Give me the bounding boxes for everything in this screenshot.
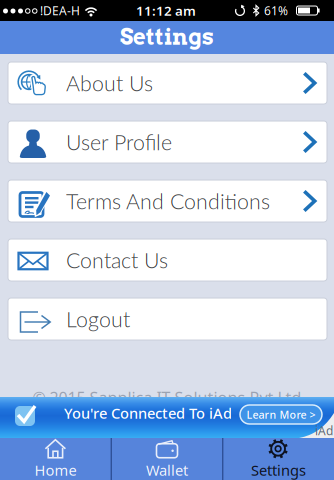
staticText: About Us <box>66 70 153 96</box>
staticText: Logout <box>66 306 130 332</box>
staticText: © 2015 Sapplica IT Solutions Pvt Ltd <box>32 387 301 408</box>
staticText: 61% <box>264 2 288 18</box>
button[interactable]: Settings <box>223 438 334 480</box>
staticText: 11:12 am <box>136 2 196 19</box>
button[interactable]: Home <box>0 438 111 480</box>
staticText: Home <box>34 460 76 480</box>
button[interactable]: Wallet <box>112 438 222 480</box>
staticText: Wallet <box>146 460 188 480</box>
button[interactable]: User Profile <box>8 121 327 163</box>
button[interactable]: Contact Us <box>8 239 327 281</box>
button[interactable]: iAd banner <box>0 397 334 438</box>
staticText: You're Connected To iAd <box>64 403 232 423</box>
staticText: Terms And Conditions <box>66 188 270 214</box>
button[interactable]: Logout <box>8 298 327 340</box>
staticText: Contact Us <box>66 247 168 273</box>
staticText: iAd <box>315 422 333 438</box>
button[interactable]: Terms And Conditions <box>8 180 327 222</box>
button[interactable]: About Us <box>8 62 327 104</box>
staticText: !DEA-H <box>40 2 80 18</box>
staticText: Settings <box>251 460 306 480</box>
staticText: Settings <box>120 24 214 50</box>
staticText: User Profile <box>66 129 172 155</box>
staticText: Learn More > <box>246 407 315 422</box>
